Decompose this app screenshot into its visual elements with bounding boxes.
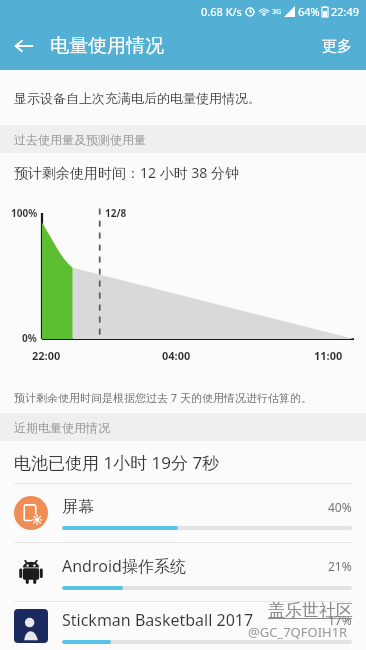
staticText: 预计剩余使用时间是根据您过去 7 天的使用情况进行估算的。: [14, 390, 313, 405]
staticText: Stickman Basketball 2017: [62, 609, 328, 631]
staticText: 电量使用情况: [50, 34, 164, 58]
staticText: 04:00: [162, 348, 191, 363]
button[interactable]: Android操作系统: [0, 543, 366, 601]
staticText: 22:49: [331, 4, 360, 19]
staticText: 12/8: [105, 206, 127, 220]
staticText: 屏幕: [62, 497, 328, 517]
staticText: 100%: [11, 206, 38, 220]
staticText: 64%: [298, 4, 320, 19]
staticText: 近期电量使用情况: [14, 420, 110, 435]
staticText: 17%: [328, 612, 352, 628]
staticText: 21%: [328, 558, 352, 574]
staticText: 0.68 K/s: [201, 4, 242, 19]
staticText: 过去使用量及预测使用量: [14, 132, 146, 147]
staticText: 显示设备自上次充满电后的电量使用情况。: [14, 90, 261, 106]
staticText: Android操作系统: [62, 555, 328, 577]
button[interactable]: 更多: [308, 27, 366, 66]
staticText: 11:00: [314, 348, 343, 363]
staticText: 盖乐世社区: [268, 600, 353, 621]
staticText: 40%: [328, 499, 352, 515]
staticText: 22:00: [32, 348, 61, 363]
staticText: @GC_7QFOIH1R: [248, 623, 348, 641]
button[interactable]: 屏幕: [0, 484, 366, 542]
staticText: 更多: [322, 37, 352, 56]
staticText: 预计剩余使用时间：12 小时 38 分钟: [14, 163, 239, 182]
staticText: 电池已使用 1小时 19分 7秒: [14, 451, 220, 474]
button[interactable]: Stickman Basketball 2017: [0, 602, 366, 650]
staticText: 3G: [272, 7, 282, 17]
staticText: 0%: [22, 331, 37, 345]
button[interactable]: Back: [4, 26, 44, 66]
